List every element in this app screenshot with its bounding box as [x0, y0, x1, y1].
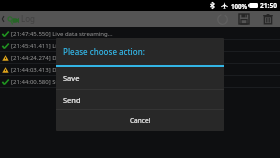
- button[interactable]: Navigate up: [0, 11, 35, 27]
- staticText: [21:47:45.550] Live data streaming...: [11, 30, 113, 38]
- button[interactable]: Send: [56, 90, 224, 109]
- staticText: 21:50: [260, 1, 277, 10]
- button[interactable]: Cancel: [56, 110, 224, 131]
- staticText: Save: [63, 73, 80, 83]
- staticText: Send: [63, 95, 81, 105]
- button[interactable]: Delete: [256, 11, 280, 27]
- button[interactable]: [21:45:41.411] Live data streaming...: [0, 40, 280, 51]
- staticText: Log: [21, 13, 35, 24]
- button[interactable]: [21:47:45.550] Live data streaming...: [0, 28, 280, 39]
- staticText: [21:44:00.580] Start session: [11, 78, 89, 86]
- staticText: Please choose action:: [63, 46, 145, 57]
- staticText: 100%: [231, 2, 248, 10]
- staticText: [21:45:41.411] Live data streaming...: [11, 42, 113, 50]
- staticText: [21:44:03.413] Device disconnected: [11, 66, 110, 74]
- staticText: [21:44:24.274] Device disconnected: [11, 54, 110, 62]
- staticText: Cancel: [130, 116, 151, 125]
- button[interactable]: [21:44:03.413] Device disconnected: [0, 64, 280, 75]
- button[interactable]: [21:44:24.274] Device disconnected: [0, 52, 280, 63]
- button[interactable]: Save: [56, 67, 224, 89]
- button[interactable]: [21:44:00.580] Start session: [0, 76, 280, 87]
- button[interactable]: Save: [232, 11, 256, 27]
